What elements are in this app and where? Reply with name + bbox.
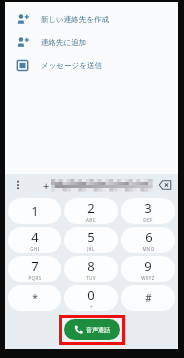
button[interactable]: More options bbox=[10, 177, 26, 193]
button[interactable]: 7 bbox=[8, 256, 61, 282]
staticText: 7 bbox=[31, 257, 39, 275]
staticText: 4 bbox=[31, 228, 39, 246]
staticText: 9 bbox=[144, 257, 152, 275]
button[interactable]: 1 bbox=[8, 198, 61, 224]
staticText: 3 bbox=[144, 199, 152, 217]
staticText: 音声通話 bbox=[86, 326, 110, 334]
staticText: PQRS bbox=[28, 275, 42, 281]
button[interactable]: 2 bbox=[64, 198, 118, 224]
staticText: DEF bbox=[143, 217, 153, 223]
button[interactable]: 5 bbox=[64, 227, 118, 253]
button[interactable]: # bbox=[121, 285, 175, 311]
button[interactable]: 音声通話 bbox=[64, 319, 120, 340]
staticText: 6 bbox=[145, 228, 153, 246]
button[interactable]: Backspace bbox=[156, 176, 174, 194]
button[interactable]: メッセージを送信 bbox=[5, 54, 178, 77]
button[interactable]: 6 bbox=[121, 227, 175, 253]
button[interactable]: * bbox=[8, 285, 61, 311]
staticText: 2 bbox=[87, 199, 95, 217]
button[interactable]: 3 bbox=[121, 198, 175, 224]
staticText: 8 bbox=[87, 257, 95, 275]
button[interactable]: 新しい連絡先を作成 bbox=[5, 8, 178, 31]
staticText: WXYZ bbox=[141, 275, 155, 281]
button[interactable]: 連絡先に追加 bbox=[5, 31, 178, 54]
staticText: メッセージを送信 bbox=[41, 61, 102, 70]
staticText: + bbox=[90, 304, 93, 310]
staticText: * bbox=[32, 291, 38, 305]
button[interactable]: 4 bbox=[8, 227, 61, 253]
staticText: 連絡先に追加 bbox=[41, 38, 87, 47]
staticText: ABC bbox=[86, 217, 96, 223]
staticText: 5 bbox=[87, 228, 95, 246]
staticText: 0 bbox=[87, 286, 95, 304]
button[interactable]: 9 bbox=[121, 256, 175, 282]
button[interactable]: 8 bbox=[64, 256, 118, 282]
staticText: + bbox=[43, 178, 50, 193]
staticText: JKL bbox=[87, 246, 95, 252]
staticText: # bbox=[145, 291, 152, 305]
staticText: 新しい連絡先を作成 bbox=[41, 15, 110, 24]
staticText: MNO bbox=[142, 246, 155, 252]
button[interactable]: 0 bbox=[64, 285, 118, 311]
staticText: 1 bbox=[31, 202, 39, 220]
staticText: GHI bbox=[30, 246, 40, 252]
staticText: TUV bbox=[86, 275, 96, 281]
